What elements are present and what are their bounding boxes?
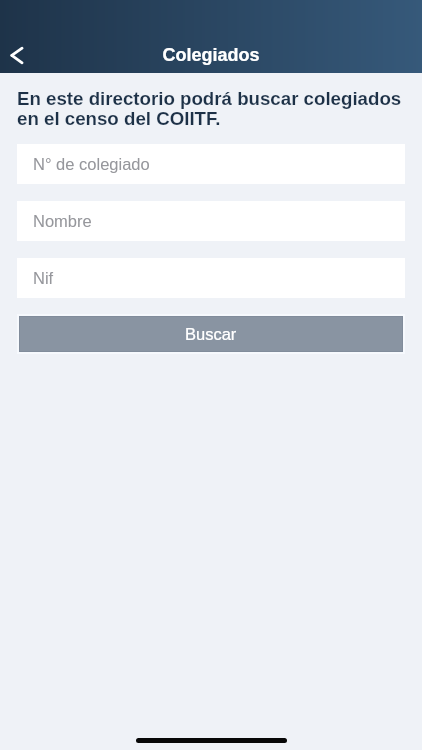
button[interactable]: Nombre <box>17 201 405 241</box>
button[interactable]: Back <box>0 34 42 73</box>
staticText: En este directorio podrá buscar colegiad… <box>17 88 402 129</box>
staticText: Buscar <box>185 325 237 343</box>
staticText: Nif <box>33 269 54 287</box>
button[interactable]: Nif <box>17 258 405 298</box>
staticText: Nombre <box>33 212 92 230</box>
button[interactable]: N° de colegiado <box>17 144 405 184</box>
staticText: N° de colegiado <box>33 155 150 173</box>
staticText: Colegiados <box>0 45 422 65</box>
button[interactable]: Buscar <box>20 317 402 351</box>
